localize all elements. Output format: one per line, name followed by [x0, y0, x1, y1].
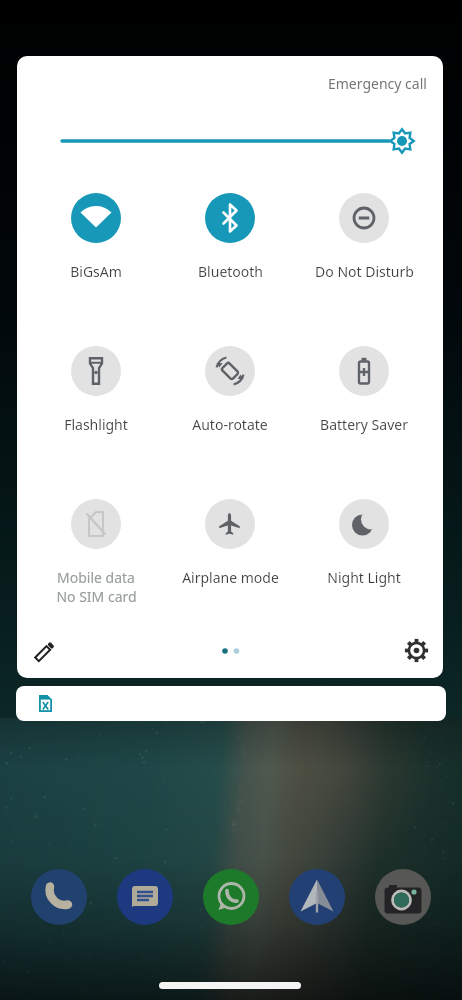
- button[interactable]: [31, 869, 87, 925]
- staticText: Bluetooth: [198, 262, 263, 281]
- button[interactable]: [402, 636, 431, 665]
- button[interactable]: Do Not Disturb: [302, 193, 426, 281]
- staticText: Airplane mode: [182, 568, 279, 587]
- button[interactable]: [16, 686, 446, 721]
- button[interactable]: [289, 869, 345, 925]
- staticText: Mobile data: [57, 568, 135, 587]
- button[interactable]: [375, 869, 431, 925]
- staticText: Battery Saver: [320, 415, 408, 434]
- button[interactable]: Night Light: [302, 499, 426, 587]
- staticText: Emergency call: [328, 74, 427, 93]
- staticText: No SIM card: [56, 587, 137, 606]
- staticText: BiGsAm: [70, 262, 122, 281]
- staticText: Do Not Disturb: [315, 262, 414, 281]
- button[interactable]: BiGsAm: [34, 193, 158, 281]
- staticText: Night Light: [327, 568, 401, 587]
- staticText: Flashlight: [64, 415, 128, 434]
- button[interactable]: Airplane mode: [168, 499, 292, 587]
- button[interactable]: Mobile data: [34, 499, 158, 606]
- button[interactable]: [203, 869, 259, 925]
- button[interactable]: Emergency call: [328, 74, 427, 93]
- button[interactable]: Flashlight: [34, 346, 158, 434]
- button[interactable]: Auto-rotate: [168, 346, 292, 434]
- button[interactable]: [31, 637, 59, 665]
- button[interactable]: Bluetooth: [168, 193, 292, 281]
- staticText: Auto-rotate: [192, 415, 268, 434]
- button[interactable]: [117, 869, 173, 925]
- button[interactable]: Battery Saver: [302, 346, 426, 434]
